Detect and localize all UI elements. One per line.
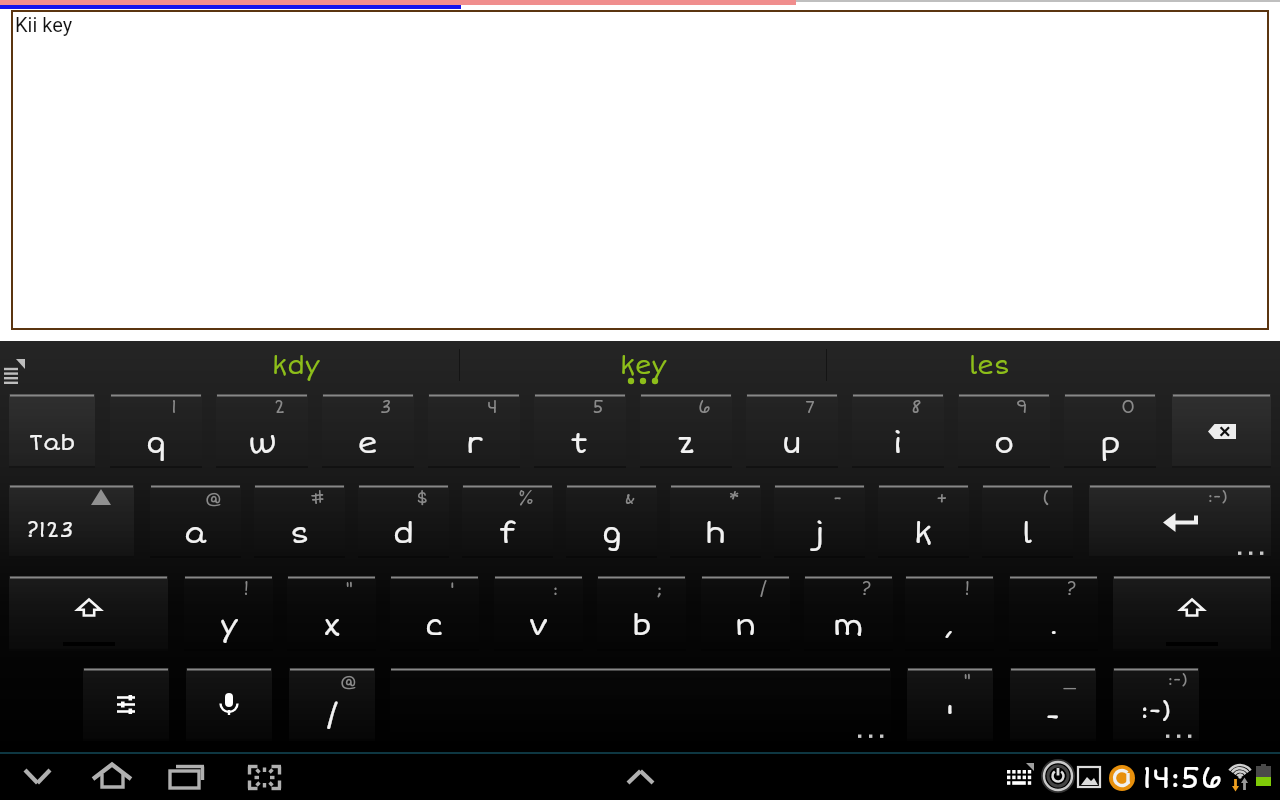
button[interactable]: 6 <box>640 394 732 468</box>
button[interactable]: ! <box>905 576 994 651</box>
button[interactable]: " <box>287 576 376 651</box>
button[interactable]: 1 <box>110 394 202 468</box>
staticText: - <box>833 487 843 509</box>
button[interactable]: @ <box>289 668 375 741</box>
button[interactable]: ; <box>597 576 686 651</box>
staticText: ?123 <box>26 516 74 543</box>
staticText: $ <box>416 487 429 509</box>
button[interactable]: Battery <box>1256 764 1272 788</box>
button[interactable]: $ <box>358 485 449 558</box>
staticText: 2 <box>274 396 286 418</box>
staticText: 8 <box>911 396 922 418</box>
button[interactable]: + <box>878 485 969 558</box>
staticText: 7 <box>805 396 816 418</box>
staticText: b <box>632 607 652 644</box>
button[interactable]: * <box>670 485 761 558</box>
button[interactable]: 3 <box>322 394 414 468</box>
button[interactable]: / <box>701 576 790 651</box>
staticText: . <box>1050 610 1058 642</box>
staticText: w <box>248 425 277 462</box>
staticText: @ <box>340 670 358 692</box>
staticText: 9 <box>1016 396 1028 418</box>
button[interactable]: ? <box>804 576 893 651</box>
staticText: v <box>529 607 548 644</box>
staticText: c <box>425 607 444 644</box>
staticText: :-) <box>1168 669 1189 690</box>
staticText: i <box>893 425 903 462</box>
staticText: z <box>678 425 695 462</box>
button[interactable]: Recents <box>162 752 210 800</box>
staticText: % <box>518 487 535 509</box>
staticText: s <box>290 515 310 552</box>
staticText: :-) <box>1141 695 1172 727</box>
button[interactable]: Kii key <box>11 10 1269 330</box>
button[interactable] <box>390 668 891 741</box>
staticText: " <box>963 670 972 692</box>
button[interactable]: _ <box>1010 668 1096 741</box>
staticText: k <box>914 515 933 552</box>
staticText: n <box>735 607 756 644</box>
staticText: ' <box>946 698 955 735</box>
button[interactable]: 7 <box>746 394 838 468</box>
button[interactable]: @ <box>150 485 241 558</box>
button[interactable]: - <box>774 485 865 558</box>
button[interactable]: More suggestions <box>1 348 29 376</box>
button[interactable]: key <box>460 341 826 389</box>
staticText: : <box>553 578 559 600</box>
button[interactable] <box>83 668 169 741</box>
button[interactable]: Home <box>88 752 136 800</box>
button[interactable]: ' <box>390 576 479 651</box>
button[interactable]: % <box>462 485 553 558</box>
button[interactable] <box>9 576 168 651</box>
button[interactable]: Expand <box>617 752 665 800</box>
button[interactable]: :-) <box>1089 485 1271 558</box>
button[interactable] <box>186 668 272 741</box>
button[interactable]: " <box>907 668 993 741</box>
button[interactable]: les <box>700 341 1280 389</box>
button[interactable]: ! <box>184 576 273 651</box>
button[interactable]: Wi-Fi <box>1228 762 1254 792</box>
button[interactable]: Sync <box>1109 765 1135 791</box>
button[interactable]: # <box>254 485 345 558</box>
staticText: y <box>220 607 238 644</box>
staticText: * <box>729 487 740 509</box>
staticText: t <box>571 425 589 462</box>
staticText: m <box>833 607 864 644</box>
staticText: les <box>969 351 1011 382</box>
staticText: q <box>146 425 167 462</box>
button[interactable]: 0 <box>1064 394 1156 468</box>
button[interactable]: 9 <box>958 394 1050 468</box>
button[interactable]: ? <box>1009 576 1098 651</box>
button[interactable]: ( <box>982 485 1073 558</box>
staticText: " <box>345 578 354 600</box>
button[interactable]: Power <box>1042 762 1076 792</box>
button[interactable] <box>1172 394 1271 468</box>
staticText: key <box>620 351 667 382</box>
staticText: u <box>782 425 802 462</box>
button[interactable]: & <box>566 485 657 558</box>
staticText: e <box>358 425 378 462</box>
button[interactable]: Hide keyboard <box>14 752 62 800</box>
button[interactable]: :-) <box>1113 668 1199 741</box>
button[interactable]: Change keyboard <box>1004 760 1036 792</box>
button[interactable]: 4 <box>428 394 520 468</box>
staticText: g <box>602 515 622 552</box>
button[interactable]: 5 <box>534 394 626 468</box>
button[interactable]: Screenshot saved <box>1077 766 1101 788</box>
staticText: , <box>945 610 954 642</box>
staticText: j <box>815 515 825 552</box>
staticText: # <box>310 487 326 509</box>
staticText: ' <box>450 578 455 600</box>
staticText: p <box>1100 425 1121 462</box>
button[interactable]: ?123 <box>9 485 134 558</box>
staticText: 4 <box>487 396 498 418</box>
button[interactable]: 8 <box>852 394 944 468</box>
staticText: kdy <box>272 351 320 382</box>
button[interactable]: kdy <box>36 341 556 389</box>
button[interactable]: Tab <box>9 394 95 468</box>
button[interactable]: Screenshot <box>240 752 288 800</box>
button[interactable]: : <box>494 576 583 651</box>
button[interactable] <box>1113 576 1271 651</box>
button[interactable]: 2 <box>216 394 308 468</box>
staticText: - <box>1045 698 1061 735</box>
